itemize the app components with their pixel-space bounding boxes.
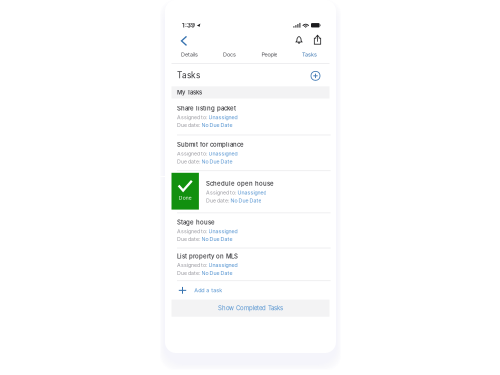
- staticText: No Due Date: [201, 122, 232, 128]
- staticText: Due date:: [177, 122, 200, 128]
- button[interactable]: List property on MLS: [165, 248, 336, 280]
- staticText: Show Completed Tasks: [218, 304, 283, 312]
- staticText: Unassigned: [208, 114, 237, 120]
- button[interactable]: Add task: [308, 67, 322, 83]
- staticText: Submit for compliance: [177, 141, 244, 148]
- button[interactable]: Details: [169, 48, 209, 61]
- staticText: Assigned to:: [177, 262, 207, 268]
- staticText: Unassigned: [208, 262, 237, 268]
- staticText: Unassigned: [208, 228, 237, 234]
- staticText: My Tasks: [177, 89, 202, 96]
- button[interactable]: Share: [309, 29, 325, 48]
- staticText: Schedule open house: [206, 180, 274, 187]
- button[interactable]: Submit for compliance: [165, 135, 336, 170]
- staticText: Tasks: [302, 51, 317, 58]
- staticText: Assigned to:: [177, 228, 207, 234]
- staticText: Docs: [223, 51, 236, 58]
- staticText: Share listing packet: [177, 105, 236, 112]
- staticText: 1:39: [182, 22, 195, 29]
- staticText: No Due Date: [201, 270, 232, 276]
- staticText: Unassigned: [237, 189, 266, 196]
- button[interactable]: Stage house: [165, 213, 336, 248]
- button[interactable]: Show Completed Tasks: [171, 300, 329, 317]
- staticText: Due date:: [206, 197, 229, 204]
- staticText: Add a task: [194, 287, 222, 294]
- staticText: People: [261, 51, 277, 58]
- staticText: Due date:: [177, 158, 200, 165]
- staticText: Tasks: [177, 70, 200, 80]
- button[interactable]: Mark done: [171, 173, 199, 210]
- staticText: Assigned to:: [177, 150, 207, 157]
- staticText: No Due Date: [230, 197, 261, 204]
- staticText: Assigned to:: [206, 189, 236, 196]
- staticText: Due date:: [177, 236, 200, 242]
- button[interactable]: Schedule open house: [199, 173, 336, 210]
- staticText: No Due Date: [201, 236, 232, 242]
- button[interactable]: Share listing packet: [165, 98, 336, 135]
- staticText: Assigned to:: [177, 114, 207, 120]
- staticText: Details: [181, 51, 198, 58]
- staticText: No Due Date: [201, 158, 232, 165]
- staticText: Unassigned: [208, 150, 237, 157]
- button[interactable]: Tasks: [289, 48, 329, 61]
- staticText: Done: [179, 195, 192, 201]
- button[interactable]: Add a task: [165, 281, 336, 300]
- staticText: Due date:: [177, 270, 200, 276]
- staticText: List property on MLS: [177, 253, 238, 260]
- staticText: Stage house: [177, 219, 215, 226]
- button[interactable]: Docs: [209, 48, 249, 61]
- button[interactable]: People: [249, 48, 289, 61]
- button[interactable]: Back: [176, 29, 192, 48]
- button[interactable]: Notifications: [293, 29, 309, 48]
